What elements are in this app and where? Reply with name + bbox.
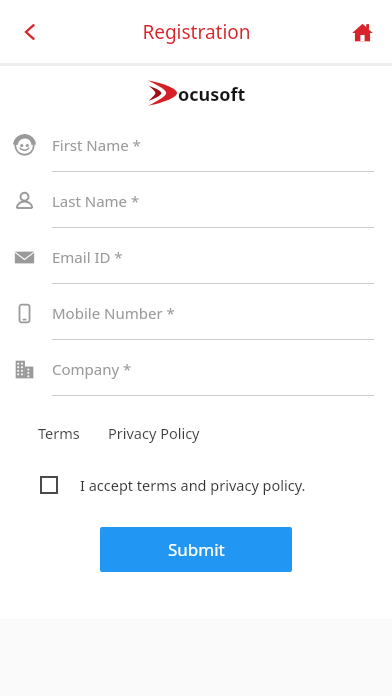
staticText: ocusoft [178, 82, 246, 107]
button[interactable]: Mobile Number * [0, 287, 392, 343]
button[interactable]: I accept terms and privacy policy. [0, 471, 392, 499]
button[interactable]: Back [8, 10, 52, 54]
staticText: Submit [168, 538, 225, 561]
button[interactable]: Submit [100, 527, 292, 572]
staticText: Mobile Number * [52, 303, 175, 323]
staticText: Email ID * [52, 247, 123, 267]
button[interactable]: First Name * [0, 119, 392, 175]
button[interactable]: Home [340, 10, 384, 54]
button[interactable]: Terms [38, 421, 80, 445]
button[interactable]: Privacy Policy [108, 421, 200, 445]
button[interactable]: Last Name * [0, 175, 392, 231]
staticText: Registration [142, 19, 251, 45]
staticText: Company * [52, 359, 132, 379]
staticText: Privacy Policy [108, 423, 200, 443]
staticText: I accept terms and privacy policy. [80, 475, 306, 495]
button[interactable]: Email ID * [0, 231, 392, 287]
button[interactable]: Company * [0, 343, 392, 399]
staticText: Terms [38, 423, 80, 443]
staticText: First Name * [52, 135, 141, 155]
staticText: Last Name * [52, 191, 140, 211]
